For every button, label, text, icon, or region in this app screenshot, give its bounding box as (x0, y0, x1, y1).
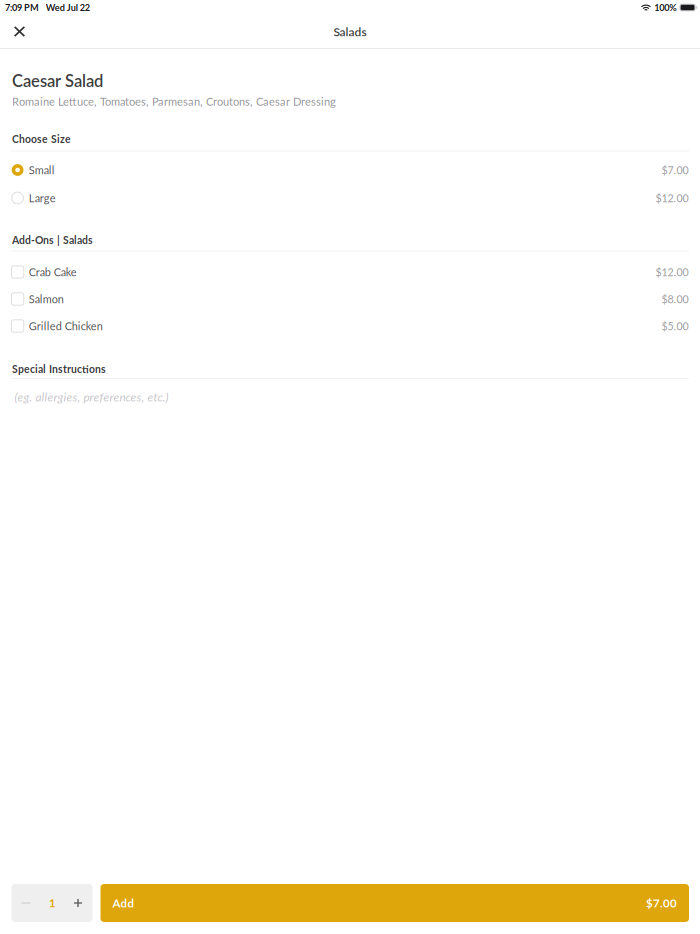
staticText: $5.00 (661, 320, 688, 332)
button[interactable]: Close (6, 15, 33, 48)
button[interactable]: (eg. allergies, preferences, etc.) (0, 379, 700, 415)
staticText: Salads (333, 24, 366, 39)
staticText: Crab Cake (29, 265, 77, 278)
staticText: $8.00 (661, 293, 688, 305)
staticText: Wed Jul 22 (46, 2, 90, 13)
staticText: Add (112, 896, 134, 910)
button[interactable]: Add (100, 884, 689, 922)
staticText: Salmon (29, 292, 64, 305)
staticText: $7.00 (661, 164, 688, 176)
staticText: 7:09 PM (5, 2, 39, 13)
staticText: Choose Size (12, 133, 71, 145)
staticText: Large (29, 191, 56, 204)
staticText: $12.00 (655, 192, 688, 204)
staticText: Caesar Salad (12, 71, 103, 90)
staticText: Grilled Chicken (29, 319, 103, 332)
button[interactable]: Large (0, 184, 700, 212)
button[interactable]: Grilled Chicken (0, 312, 700, 339)
staticText: $7.00 (646, 896, 677, 910)
button[interactable]: Crab Cake (0, 258, 700, 285)
button[interactable]: Small (0, 156, 700, 184)
staticText: Romaine Lettuce, Tomatoes, Parmesan, Cro… (12, 95, 336, 108)
staticText: Add-Ons | Salads (12, 234, 93, 246)
staticText: $12.00 (655, 266, 688, 278)
staticText: 100% (654, 2, 677, 13)
staticText: Special Instructions (12, 363, 106, 375)
button[interactable]: Salmon (0, 285, 700, 312)
staticText: (eg. allergies, preferences, etc.) (14, 390, 168, 404)
staticText: 1 (49, 896, 55, 910)
button[interactable]: Increase quantity (63, 884, 92, 922)
button[interactable]: Quantity, 1 (40, 884, 63, 922)
staticText: Small (29, 163, 55, 176)
